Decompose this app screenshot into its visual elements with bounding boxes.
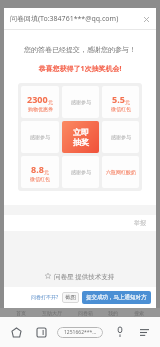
button[interactable]: Close (140, 13, 152, 25)
button[interactable]: 问卷星 提供技术支持 (4, 265, 156, 287)
staticText: 感谢参与 (71, 169, 91, 175)
staticText: 购物优惠券 (28, 106, 53, 112)
button[interactable]: 1251662***… (57, 327, 103, 338)
staticText: 元 (44, 169, 49, 175)
button[interactable]: 5.5 (102, 86, 139, 118)
staticText: 截图 (65, 294, 76, 301)
button[interactable]: 提交成功，马上通知对方 (82, 291, 151, 304)
button[interactable]: Tabs (33, 324, 49, 340)
button[interactable]: 问卷箱 (78, 310, 93, 316)
staticText: 提交成功，马上通知对方 (86, 294, 147, 301)
button[interactable]: 感谢参与 (62, 156, 99, 188)
button[interactable]: 立即 (62, 121, 99, 153)
staticText: 2300 (27, 93, 48, 105)
button[interactable]: 感谢参与 (62, 86, 99, 118)
staticText: 5.5 (112, 93, 125, 105)
staticText: 1251662***… (64, 329, 97, 336)
staticText: 感谢参与 (111, 134, 131, 140)
staticText: 抽奖 (73, 137, 89, 147)
button[interactable]: 2300 (21, 86, 59, 118)
staticText: 问卷星 提供技术支持 (54, 272, 115, 281)
staticText: 微信红包 (111, 106, 131, 112)
button[interactable]: 感谢参与 (102, 121, 139, 153)
staticText: 元 (125, 99, 130, 105)
staticText: 微信红包 (30, 176, 50, 182)
button[interactable]: Voice search (112, 324, 128, 340)
staticText: 您的答卷已经提交，感谢您的参与！ (4, 45, 156, 54)
staticText: 8.8 (31, 163, 44, 175)
button[interactable]: 问卷打不开? (31, 294, 59, 301)
staticText: 元 (48, 99, 53, 105)
button[interactable]: 感谢参与 (21, 121, 59, 153)
staticText: 恭喜您获得了1次抽奖机会! (4, 64, 156, 74)
staticText: 感谢参与 (30, 134, 50, 140)
staticText: 六瓶网红酸奶 (106, 169, 136, 175)
staticText: 立即 (73, 127, 89, 137)
button[interactable]: Menu (136, 324, 152, 340)
button[interactable]: 8.8 (21, 156, 59, 188)
button[interactable]: 我的 (108, 310, 118, 316)
button[interactable]: 首页 (16, 310, 26, 316)
button[interactable]: 六瓶网红酸奶 (102, 156, 139, 188)
staticText: 感谢参与 (71, 99, 91, 105)
button[interactable]: 截图 (62, 292, 79, 303)
button[interactable]: Home (8, 324, 24, 340)
button[interactable]: 互助大厅 (42, 310, 62, 316)
button[interactable]: 搜索 (134, 310, 144, 316)
button[interactable]: 举报 (134, 219, 146, 227)
staticText: 问卷回填(To:384761***@qq.com) (10, 14, 119, 24)
